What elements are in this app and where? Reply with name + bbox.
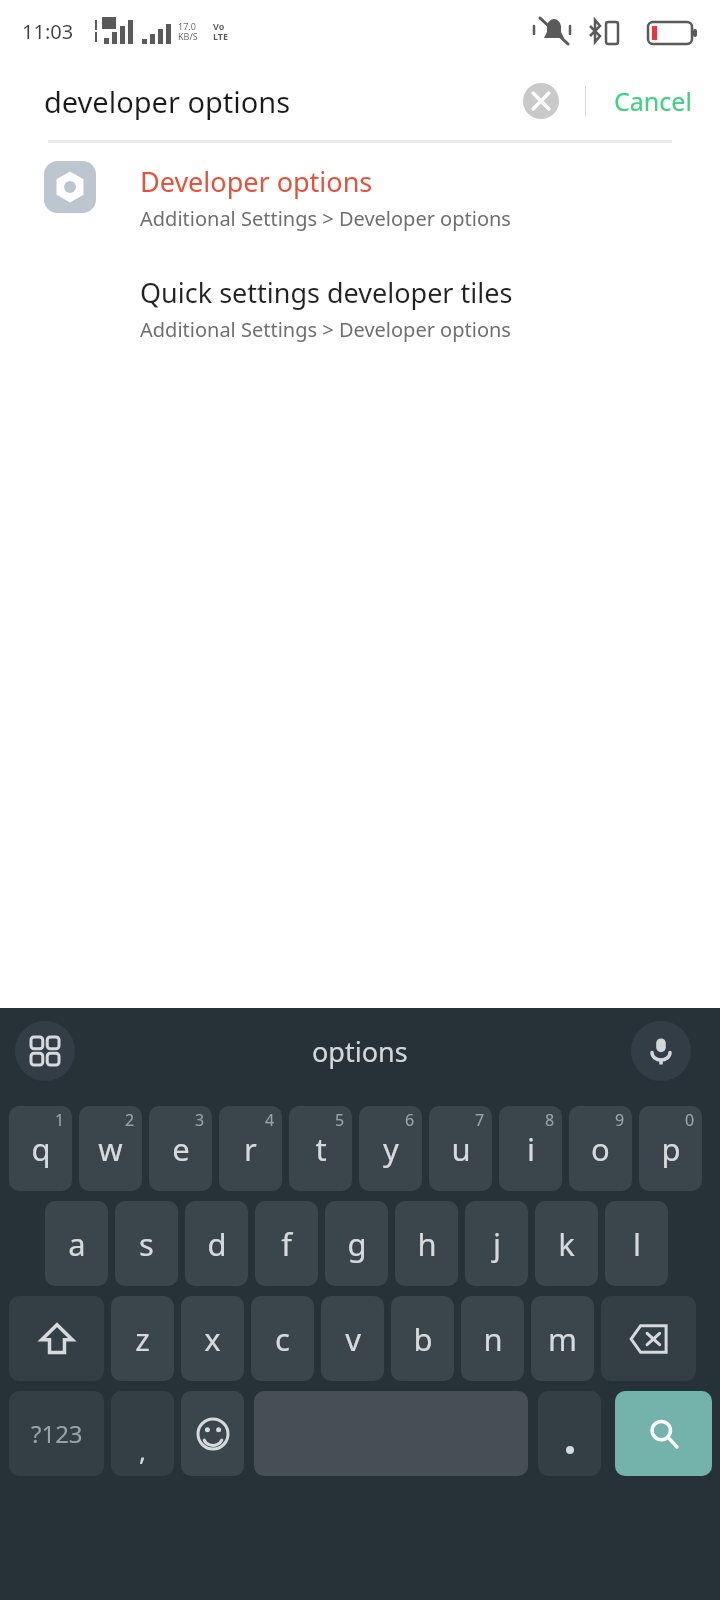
staticText: j (493, 1223, 501, 1265)
staticText: 7 (475, 1109, 485, 1131)
button[interactable]: Cancel (606, 76, 700, 126)
staticText: r (244, 1128, 257, 1170)
button[interactable]: n (461, 1296, 524, 1381)
button[interactable]: q (9, 1106, 72, 1191)
button[interactable]: s (115, 1201, 178, 1286)
staticText: t (315, 1128, 327, 1170)
button[interactable]: p (639, 1106, 702, 1191)
staticText: i (527, 1128, 535, 1170)
staticText: d (207, 1223, 227, 1265)
staticText: p (661, 1128, 681, 1170)
button[interactable]: g (325, 1201, 388, 1286)
button[interactable]: v (321, 1296, 384, 1381)
staticText: b (413, 1318, 433, 1360)
button[interactable]: Comma (111, 1391, 174, 1476)
staticText: q (31, 1128, 51, 1170)
staticText: Cancel (614, 84, 692, 118)
button[interactable]: Emoji (181, 1391, 244, 1476)
button[interactable]: r (219, 1106, 282, 1191)
staticText: ?123 (31, 1417, 83, 1450)
staticText: Additional Settings > Developer options (140, 205, 511, 232)
staticText: 2 (125, 1109, 135, 1131)
staticText: 17.0 KB/S (178, 20, 198, 42)
staticText: 6 (405, 1109, 415, 1131)
staticText: u (451, 1128, 471, 1170)
staticText: 5 (335, 1109, 345, 1131)
button[interactable]: i (499, 1106, 562, 1191)
button[interactable]: Quick settings developer tiles (0, 272, 720, 343)
button[interactable]: y (359, 1106, 422, 1191)
button[interactable]: Shift (9, 1296, 104, 1381)
button[interactable]: o (569, 1106, 632, 1191)
button[interactable]: w (79, 1106, 142, 1191)
staticText: w (98, 1128, 123, 1170)
staticText: v (345, 1318, 361, 1360)
button[interactable]: t (289, 1106, 352, 1191)
button[interactable]: j (465, 1201, 528, 1286)
button[interactable]: Search (615, 1391, 712, 1476)
staticText: e (172, 1128, 190, 1170)
button[interactable]: k (535, 1201, 598, 1286)
staticText: , (139, 1433, 146, 1468)
staticText: 1 (55, 1109, 65, 1131)
staticText: o (591, 1128, 610, 1170)
button[interactable]: l (605, 1201, 668, 1286)
button[interactable]: Period (538, 1391, 601, 1476)
staticText: c (275, 1318, 290, 1360)
button[interactable]: h (395, 1201, 458, 1286)
staticText: Developer options (140, 163, 373, 200)
button[interactable]: ?123 (9, 1391, 104, 1476)
staticText: options (312, 1033, 408, 1070)
button[interactable]: Voice input (631, 1021, 691, 1081)
staticText: 0 (685, 1109, 695, 1131)
staticText: 11:03 (22, 18, 74, 45)
staticText: m (548, 1318, 577, 1360)
button[interactable]: Keyboard options (15, 1021, 75, 1081)
staticText: k (558, 1223, 575, 1265)
staticText: 9 (615, 1109, 625, 1131)
staticText: developer options (44, 82, 519, 121)
staticText: z (135, 1318, 150, 1360)
staticText: s (139, 1223, 154, 1265)
button[interactable]: z (111, 1296, 174, 1381)
staticText: g (347, 1223, 367, 1265)
staticText: 4 (265, 1109, 275, 1131)
button[interactable]: Backspace (601, 1296, 696, 1381)
staticText: a (68, 1223, 86, 1265)
button[interactable]: e (149, 1106, 212, 1191)
button[interactable]: x (181, 1296, 244, 1381)
button[interactable]: d (185, 1201, 248, 1286)
button[interactable]: Developer options (0, 161, 720, 232)
staticText: h (417, 1223, 437, 1265)
staticText: f (281, 1223, 292, 1265)
staticText: x (204, 1318, 221, 1360)
staticText: l (633, 1223, 641, 1265)
staticText: Vo LTE (213, 20, 229, 42)
button[interactable]: c (251, 1296, 314, 1381)
staticText: 3 (195, 1109, 205, 1131)
button[interactable]: Clear search (519, 79, 563, 123)
staticText: n (483, 1318, 503, 1360)
staticText: y (383, 1128, 399, 1170)
button[interactable]: a (45, 1201, 108, 1286)
button[interactable]: b (391, 1296, 454, 1381)
button[interactable]: m (531, 1296, 594, 1381)
button[interactable]: f (255, 1201, 318, 1286)
button[interactable]: u (429, 1106, 492, 1191)
staticText: Quick settings developer tiles (140, 274, 513, 311)
staticText: Additional Settings > Developer options (140, 316, 511, 343)
staticText: 8 (545, 1109, 555, 1131)
